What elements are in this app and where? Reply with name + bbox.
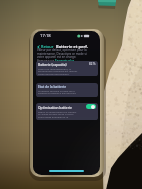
button[interactable]: Batterie (capacite) [36, 61, 98, 76]
staticText: Batterie et perf. [56, 44, 88, 49]
staticText: Suite a un refroidissement, la performan… [38, 67, 78, 75]
staticText: Le logiciel surveille la sante de la bat… [38, 89, 81, 96]
staticText: Optimisation batterie [38, 105, 72, 109]
staticText: Retour [41, 44, 54, 49]
other: Back [37, 45, 40, 49]
button[interactable]: Etat de la batterie [36, 83, 98, 97]
button[interactable]: Back [36, 44, 55, 49]
button[interactable]: En savoir plus [55, 59, 75, 63]
staticText: 17:18 [40, 33, 51, 39]
staticText: Valeur par defaut, optimisee pour la mai… [37, 48, 87, 59]
staticText: 82 % [89, 62, 96, 66]
staticText: Batterie (capacite) [38, 62, 67, 66]
staticText: Etat de la batterie [38, 84, 67, 88]
staticText: Reduit le vieillissement en limitant la … [38, 110, 77, 119]
button[interactable]: Optimisation batterie [36, 103, 98, 120]
staticText: Appuyez sur [37, 59, 55, 63]
button[interactable]: Optimisation batterie [86, 104, 96, 109]
